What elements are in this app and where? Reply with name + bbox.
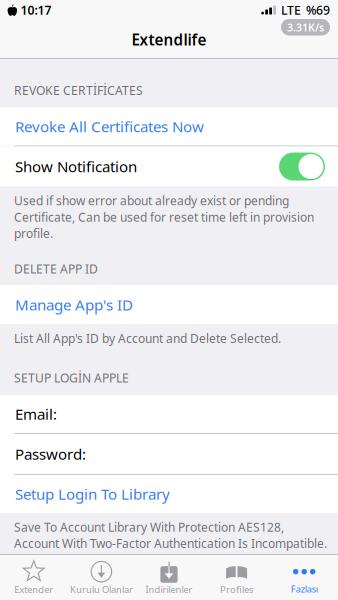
staticText: SETUP LOGİN APPLE [14, 369, 129, 386]
staticText: İndirilenler [145, 583, 192, 596]
button[interactable]: Profiles [203, 557, 270, 598]
button[interactable]: Kurulu Olanlar [68, 557, 135, 598]
staticText: Fazlası [291, 583, 318, 595]
staticText: Extender [14, 583, 53, 596]
button[interactable]: Extender [0, 557, 68, 598]
button[interactable]: İndirilenler [135, 557, 203, 598]
staticText: Revoke All Certificates Now [15, 116, 204, 137]
staticText: Kurulu Olanlar [70, 583, 133, 596]
staticText: 3.31K/s [287, 20, 324, 34]
button[interactable]: Show Notification [279, 152, 325, 180]
button[interactable]: Fazlası [270, 558, 338, 597]
staticText: Save To Account Library With Protection … [14, 519, 327, 552]
staticText: LTE [281, 2, 301, 18]
staticText: DELETE APP ID [14, 261, 98, 277]
staticText: Show Notification [15, 156, 137, 177]
staticText: Manage App's ID [15, 294, 133, 315]
button[interactable]: Email: [0, 395, 338, 433]
staticText: Used if show error about already exist o… [14, 192, 314, 241]
button[interactable]: Revoke All Certificates Now [0, 107, 338, 145]
staticText: Password: [15, 444, 86, 464]
staticText: Setup Login To Library [15, 484, 170, 504]
staticText: Email: [15, 404, 57, 424]
button[interactable]: Setup Login To Library [0, 475, 338, 513]
staticText: List All App's ID by Account and Delete … [14, 330, 281, 346]
staticText: REVOKE CERTİFİCATES [14, 82, 143, 98]
button[interactable]: Password: [0, 434, 338, 474]
staticText: %69 [306, 2, 330, 18]
staticText: Profiles [220, 583, 253, 596]
staticText: 10:17 [21, 2, 52, 18]
button[interactable]: Manage App's ID [0, 285, 338, 324]
staticText: Extendlife [131, 29, 206, 50]
